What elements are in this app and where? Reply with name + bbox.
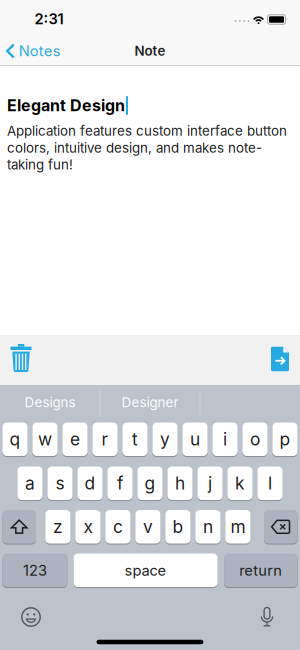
staticText: c (113, 517, 123, 537)
staticText: z (53, 517, 63, 537)
button[interactable]: q (2, 422, 28, 457)
staticText: r (101, 429, 108, 449)
staticText: Note (134, 43, 165, 59)
staticText: Application features custom interface bu… (7, 123, 287, 139)
button[interactable]: Backspace (264, 510, 298, 544)
staticText: Designer (121, 395, 178, 410)
staticText: a (25, 473, 35, 493)
button[interactable]: v (135, 510, 160, 544)
staticText: Designs (24, 395, 75, 410)
button[interactable]: r (92, 422, 118, 457)
staticText: 2:31 (34, 10, 63, 28)
staticText: taking fun! (7, 157, 73, 173)
button[interactable]: k (227, 466, 253, 501)
staticText: s (55, 473, 64, 493)
button[interactable]: a (17, 466, 43, 501)
button[interactable]: n (195, 510, 220, 544)
button[interactable]: m (225, 510, 250, 544)
button[interactable]: z (45, 510, 70, 544)
button[interactable]: Shift (2, 510, 36, 544)
staticText: d (84, 473, 95, 493)
staticText: n (203, 517, 213, 537)
staticText: colors, intuitive design, and makes note… (7, 140, 262, 156)
button[interactable]: Designer (101, 386, 199, 419)
button[interactable]: b (165, 510, 190, 544)
button[interactable]: t (122, 422, 148, 457)
button[interactable]: i (212, 422, 238, 457)
button[interactable]: h (167, 466, 193, 501)
button[interactable]: w (32, 422, 58, 457)
button[interactable]: o (242, 422, 268, 457)
button[interactable]: Export note (262, 341, 298, 377)
button[interactable]: Emoji (21, 607, 41, 627)
staticText: Elegant Design (7, 96, 125, 115)
staticText: k (235, 473, 245, 493)
staticText: w (38, 429, 52, 449)
staticText: 123 (23, 562, 47, 579)
button[interactable]: j (197, 466, 223, 501)
button[interactable]: u (182, 422, 208, 457)
button[interactable]: c (105, 510, 130, 544)
staticText: v (143, 517, 153, 537)
staticText: q (9, 429, 20, 449)
staticText: p (279, 429, 290, 449)
staticText: b (172, 517, 183, 537)
button[interactable]: d (77, 466, 103, 501)
button[interactable]: f (107, 466, 133, 501)
button[interactable]: Delete note (1, 338, 41, 378)
staticText: o (250, 429, 260, 449)
button[interactable]: e (62, 422, 88, 457)
button[interactable]: p (272, 422, 298, 457)
button[interactable]: Dictate (260, 607, 274, 627)
button[interactable]: s (47, 466, 73, 501)
staticText: t (132, 429, 138, 449)
staticText: u (190, 429, 200, 449)
button[interactable]: g (137, 466, 163, 501)
staticText: space (125, 562, 167, 579)
staticText: Notes (19, 42, 61, 60)
staticText: i (223, 429, 227, 449)
staticText: g (144, 473, 155, 493)
staticText: m (230, 517, 245, 537)
staticText: e (70, 429, 80, 449)
button[interactable]: space (74, 553, 218, 587)
staticText: f (117, 473, 123, 493)
staticText: h (175, 473, 185, 493)
button[interactable]: l (257, 466, 283, 501)
staticText: j (208, 473, 212, 493)
button[interactable]: return (224, 553, 298, 587)
button[interactable]: x (75, 510, 100, 544)
staticText: return (239, 562, 282, 579)
button[interactable]: y (152, 422, 178, 457)
staticText: x (83, 517, 92, 537)
staticText: y (160, 429, 170, 449)
button[interactable]: 123 (2, 553, 67, 587)
button[interactable]: Designs (1, 386, 99, 419)
staticText: l (268, 473, 272, 493)
button[interactable]: Notes (5, 42, 61, 60)
